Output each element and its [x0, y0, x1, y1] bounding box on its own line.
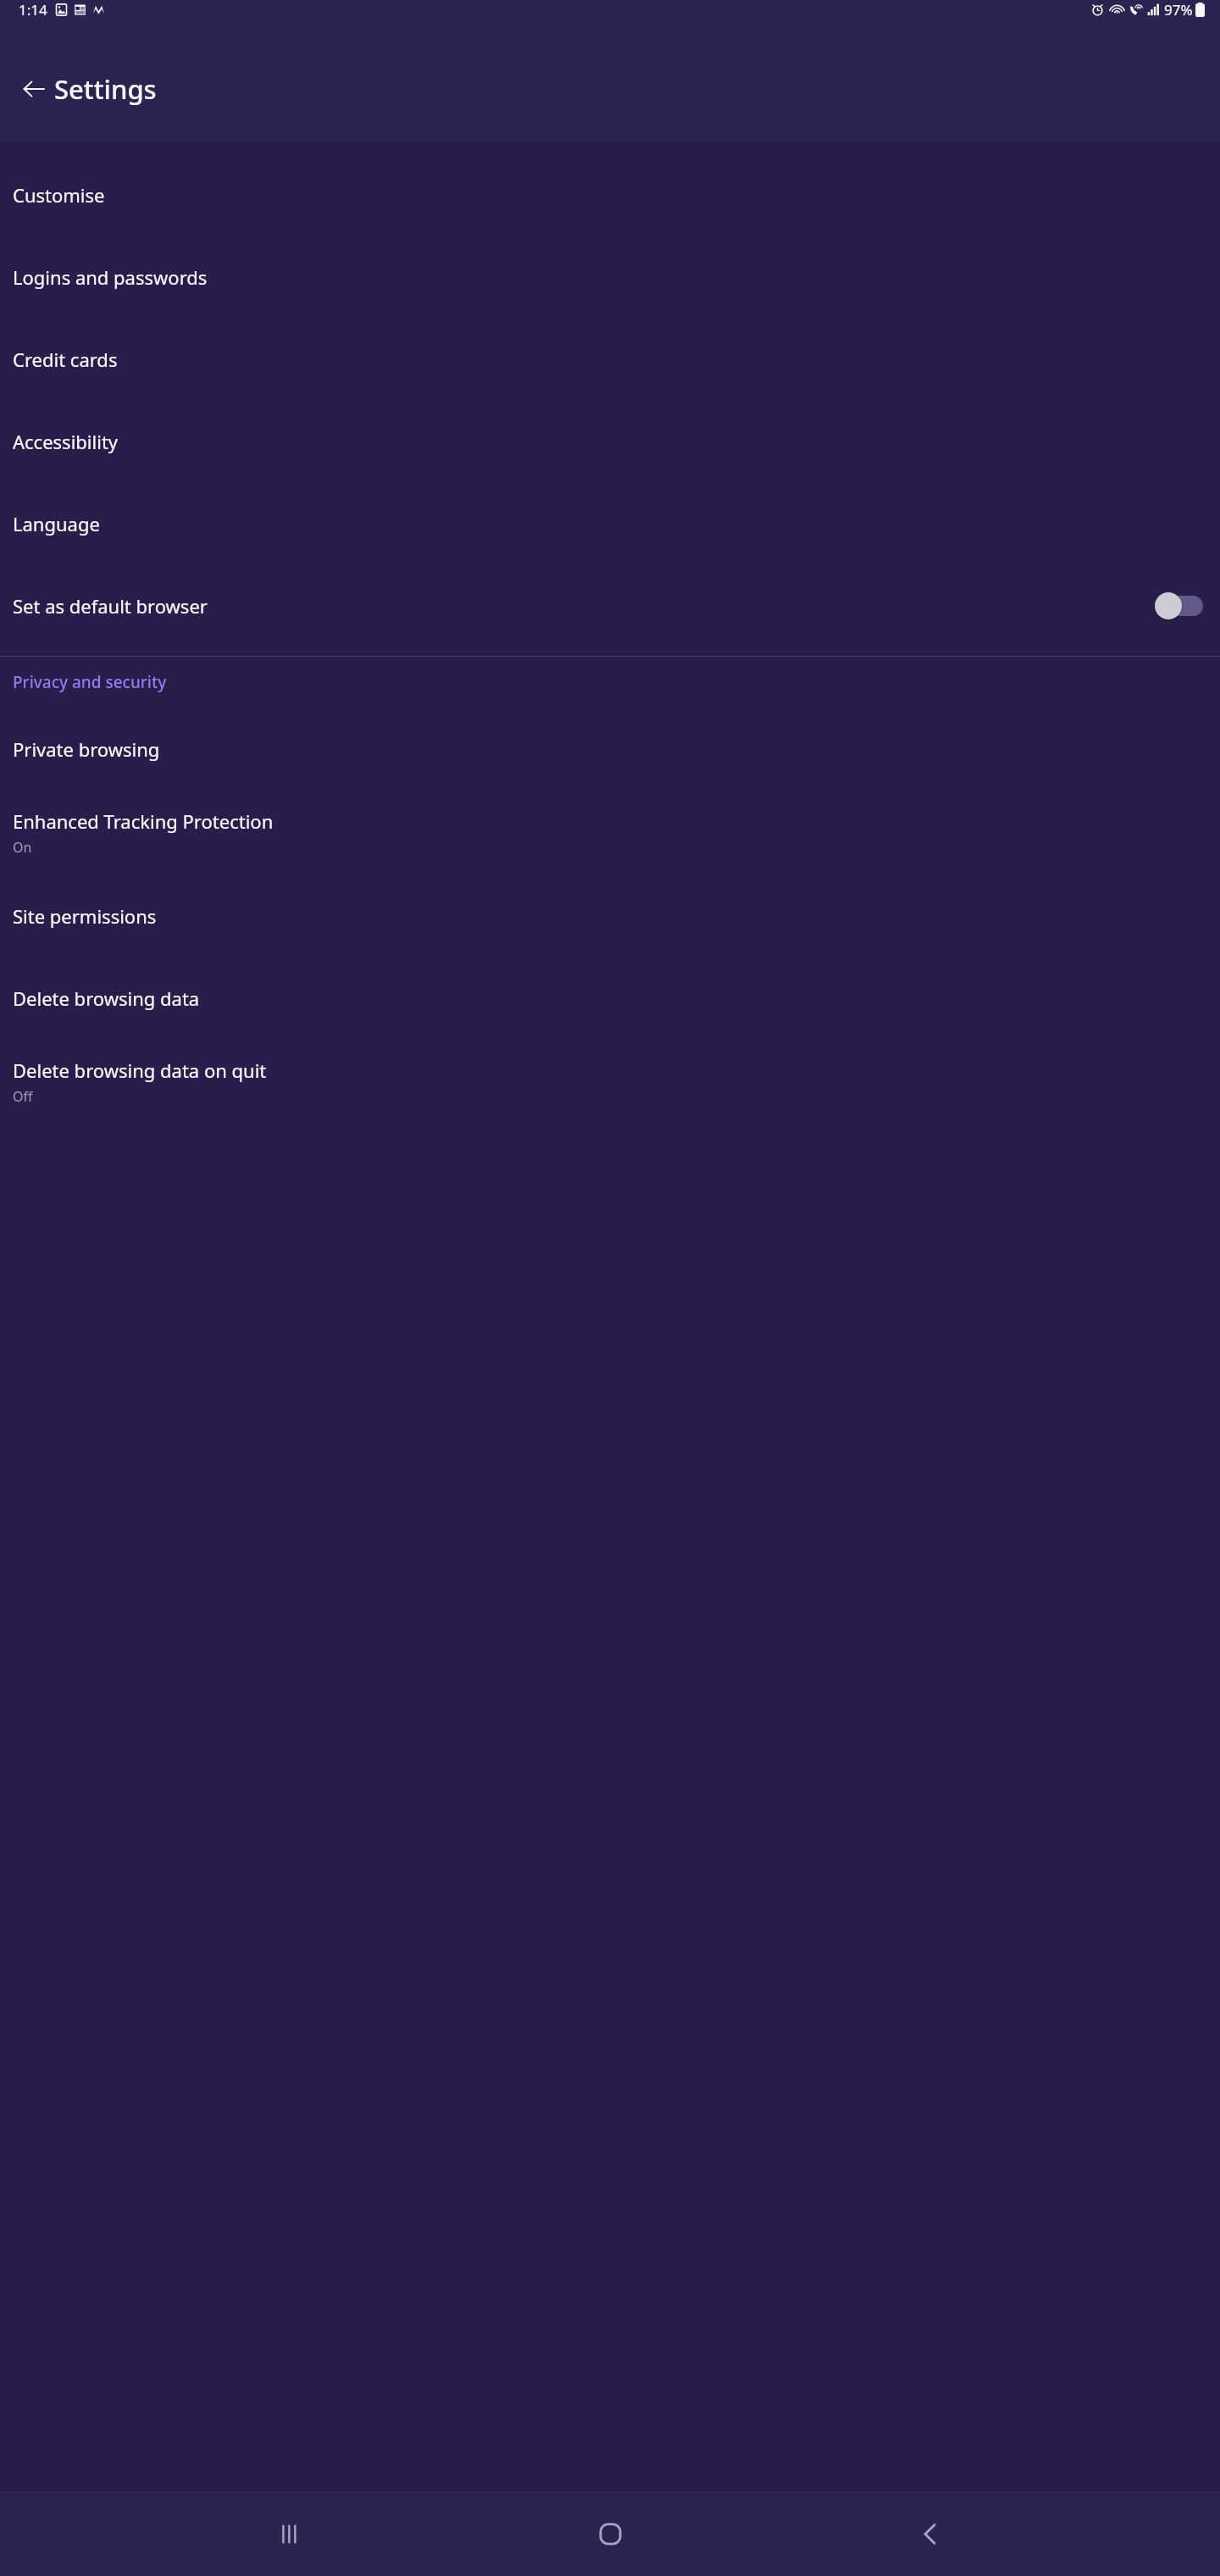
- staticText: Accessibility: [13, 429, 119, 454]
- staticText: Customise: [13, 182, 105, 208]
- button[interactable]: Delete browsing data: [0, 957, 1220, 1039]
- staticText: 97%: [1164, 0, 1193, 19]
- staticText: Set as default browser: [13, 593, 208, 619]
- button[interactable]: Recent apps: [259, 2503, 320, 2564]
- button[interactable]: Back: [10, 65, 58, 113]
- staticText: Privacy and security: [13, 671, 167, 693]
- staticText: Enhanced Tracking Protection: [13, 808, 274, 834]
- staticText: Settings: [54, 71, 157, 107]
- button[interactable]: Logins and passwords: [0, 236, 1220, 318]
- staticText: On: [13, 838, 32, 857]
- button[interactable]: Language: [0, 482, 1220, 564]
- button[interactable]: Enhanced Tracking Protection: [0, 790, 1220, 874]
- staticText: 1:14: [19, 0, 47, 19]
- staticText: Language: [13, 511, 100, 536]
- button[interactable]: Customise: [0, 153, 1220, 236]
- button[interactable]: Credit cards: [0, 318, 1220, 400]
- button[interactable]: Back: [900, 2503, 961, 2564]
- button[interactable]: Private browsing: [0, 708, 1220, 790]
- button[interactable]: Accessibility: [0, 400, 1220, 482]
- staticText: Private browsing: [13, 736, 160, 762]
- staticText: Delete browsing data: [13, 985, 200, 1011]
- button[interactable]: Site permissions: [0, 874, 1220, 957]
- staticText: Logins and passwords: [13, 264, 208, 290]
- staticText: Credit cards: [13, 347, 118, 372]
- staticText: Site permissions: [13, 903, 157, 929]
- button[interactable]: Home: [579, 2503, 640, 2564]
- staticText: Off: [13, 1087, 33, 1106]
- button[interactable]: Set as default browser: [0, 564, 1220, 647]
- button[interactable]: Delete browsing data on quit: [0, 1039, 1220, 1124]
- staticText: Delete browsing data on quit: [13, 1058, 267, 1083]
